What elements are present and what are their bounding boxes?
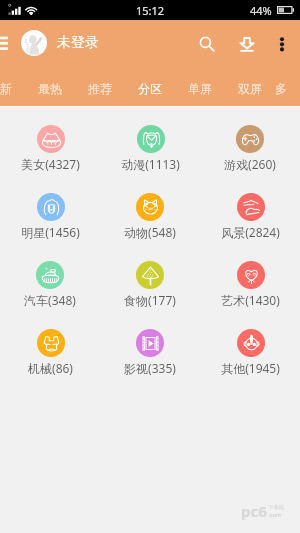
staticText: 最新 (0, 81, 12, 96)
staticText: 动物(548) (124, 224, 176, 240)
staticText: 分区 (138, 81, 162, 96)
staticText: 食物(177) (124, 292, 176, 308)
button[interactable]: 双屏 (225, 68, 275, 108)
button[interactable]: 美女(4327) (0, 125, 100, 193)
staticText: 风景(2824) (221, 224, 280, 240)
button[interactable]: 游戏(260) (200, 125, 300, 193)
button[interactable]: 动漫(1113) (100, 125, 200, 193)
button[interactable]: 最新 (0, 68, 25, 108)
button[interactable]: 艺术(1430) (200, 261, 300, 329)
staticText: 单屏 (188, 81, 212, 96)
staticText: 明星(1456) (21, 224, 80, 240)
staticText: 15:12 (136, 3, 165, 18)
button[interactable]: 机械(86) (0, 329, 100, 397)
button[interactable]: More options (267, 29, 297, 59)
button[interactable]: Search (191, 28, 223, 60)
button[interactable]: Menu (0, 26, 8, 60)
staticText: 汽车(348) (24, 292, 76, 308)
staticText: 动漫(1113) (121, 156, 180, 172)
staticText: 艺术(1430) (221, 292, 280, 308)
staticText: 44% (250, 3, 272, 18)
staticText: 游戏(260) (224, 156, 276, 172)
staticText: 机械(86) (28, 360, 73, 376)
staticText: 未登录 (57, 34, 99, 52)
staticText: 双屏 (238, 81, 262, 96)
button[interactable]: 汽车(348) (0, 261, 100, 329)
button[interactable]: Profile picture (21, 30, 47, 56)
button[interactable]: 动物(548) (100, 193, 200, 261)
staticText: 推荐 (88, 81, 112, 96)
button[interactable]: 最热 (25, 68, 75, 108)
button[interactable]: 推荐 (75, 68, 125, 108)
button[interactable]: 其他(1945) (200, 329, 300, 397)
button[interactable]: Download (231, 28, 263, 60)
button[interactable]: 食物(177) (100, 261, 200, 329)
staticText: pc6 (241, 501, 267, 521)
staticText: 下载站 (268, 504, 285, 511)
staticText: 其他(1945) (221, 360, 280, 376)
button[interactable]: 风景(2824) (200, 193, 300, 261)
button[interactable]: 影视(335) (100, 329, 200, 397)
staticText: 影视(335) (124, 360, 176, 376)
staticText: 美女(4327) (21, 156, 80, 172)
button[interactable]: 单屏 (175, 68, 225, 108)
button[interactable]: 明星(1456) (0, 193, 100, 261)
button[interactable]: 未登录 (57, 34, 99, 52)
staticText: .com (268, 511, 282, 518)
button[interactable]: 分区 (125, 68, 175, 108)
staticText: 最热 (38, 81, 62, 96)
